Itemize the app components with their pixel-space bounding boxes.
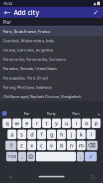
staticText: ⌄ <box>96 110 100 116</box>
button[interactable]: Shift <box>5 141 16 150</box>
button[interactable]: m <box>77 141 86 150</box>
staticText: Part <box>72 111 79 116</box>
button[interactable]: ?123 <box>6 152 17 161</box>
button[interactable]: Period <box>77 152 84 161</box>
button[interactable]: Back <box>2 172 18 182</box>
button[interactable]: Back <box>1 7 13 18</box>
button[interactable]: a <box>7 130 16 139</box>
button[interactable]: Delete <box>87 141 98 150</box>
staticText: ☺ <box>28 153 34 160</box>
staticText: Add city <box>13 8 39 17</box>
button[interactable]: k <box>77 130 86 139</box>
staticText: 10:32 <box>3 1 12 6</box>
button[interactable]: v <box>47 141 56 150</box>
staticText: Par <box>24 111 30 116</box>
staticText: ▢ <box>91 174 95 179</box>
button[interactable]: y <box>52 118 61 128</box>
button[interactable]: Parana, Entre Rios, Argentina <box>0 45 103 55</box>
button[interactable]: r <box>32 118 41 128</box>
staticText: Dombivli, Maharashtra, India <box>3 38 54 43</box>
staticText: l <box>91 131 92 138</box>
button[interactable]: j <box>67 130 76 139</box>
staticText: c <box>40 142 43 149</box>
button[interactable]: s <box>17 130 26 139</box>
button[interactable]: e <box>22 118 31 128</box>
staticText: u <box>65 120 68 127</box>
staticText: ◁ <box>8 174 11 179</box>
staticText: h <box>60 131 63 138</box>
staticText: z <box>20 142 23 149</box>
button[interactable]: Dombivli, Maharashtra, India <box>0 36 103 45</box>
staticText: k <box>80 131 83 138</box>
staticText: Paramaribo, Paramaribo, Suriname <box>3 57 66 62</box>
button[interactable]: i <box>72 118 81 128</box>
button[interactable]: Paris, Île-de-France, France <box>0 27 103 36</box>
staticText: t <box>46 120 48 127</box>
staticText: g <box>50 131 53 138</box>
button[interactable]: Done <box>90 7 101 18</box>
staticText: o <box>85 120 88 127</box>
staticText: n <box>70 142 73 149</box>
button[interactable]: Recents <box>85 172 101 182</box>
staticText: , <box>22 153 23 160</box>
staticText: f <box>41 131 43 138</box>
button[interactable]: Paramaribo, Paramaribo, Suriname <box>0 55 103 64</box>
staticText: v <box>50 142 53 149</box>
staticText: m <box>79 142 84 149</box>
staticText: ⇧ <box>9 142 13 148</box>
button[interactable]: Parung, West Java, Indonesia <box>0 82 103 92</box>
staticText: i <box>76 120 77 127</box>
staticText: Par <box>3 18 11 25</box>
button[interactable]: Voice input <box>2 111 7 116</box>
button[interactable]: Expand suggestions <box>96 111 101 116</box>
button[interactable]: Comma <box>18 152 26 161</box>
button[interactable]: h <box>57 130 66 139</box>
staticText: r <box>36 120 38 127</box>
button[interactable]: b <box>57 141 66 150</box>
button[interactable]: Home <box>36 172 66 182</box>
staticText: ✓ <box>93 9 99 16</box>
staticText: b <box>60 142 63 149</box>
button[interactable]: p <box>92 118 101 128</box>
button[interactable]: Old Kasaragod, Rajshahi Division, Bangla… <box>0 92 103 101</box>
staticText: s <box>20 131 23 138</box>
staticText: x <box>30 142 33 149</box>
button[interactable]: z <box>17 141 26 150</box>
button[interactable]: Space <box>36 152 76 161</box>
button[interactable]: g <box>47 130 56 139</box>
staticText: Paradise, Nevada, United States <box>3 66 57 71</box>
staticText: d <box>30 131 33 138</box>
button[interactable]: w <box>12 118 21 128</box>
staticText: Party <box>46 111 55 116</box>
staticText: e <box>25 120 28 127</box>
staticText: Paris, Île-de-France, France <box>3 29 50 34</box>
button[interactable]: f <box>37 130 46 139</box>
staticText: a <box>10 131 13 138</box>
staticText: Parana, Entre Rios, Argentina <box>3 47 53 53</box>
button[interactable]: o <box>82 118 91 128</box>
staticText: y <box>55 120 58 127</box>
staticText: Old Kasaragod, Rajshahi Division, Bangla… <box>3 94 81 99</box>
button[interactable]: Parauapebas, Pará, Brazil <box>0 73 103 82</box>
staticText: p <box>95 120 98 127</box>
staticText: ▲ <box>93 1 96 6</box>
staticText: . <box>80 153 81 160</box>
button[interactable]: n <box>67 141 76 150</box>
button[interactable]: t <box>42 118 51 128</box>
button[interactable]: u <box>62 118 71 128</box>
staticText: Parauapebas, Pará, Brazil <box>3 75 48 80</box>
button[interactable]: Enter <box>85 152 97 161</box>
button[interactable]: c <box>37 141 46 150</box>
staticText: ✓ <box>89 153 93 160</box>
button[interactable]: Paradise, Nevada, United States <box>0 64 103 73</box>
staticText: ?123 <box>8 154 16 159</box>
button[interactable]: x <box>27 141 36 150</box>
staticText: ⌫ <box>88 142 96 148</box>
button[interactable]: l <box>87 130 96 139</box>
button[interactable]: d <box>27 130 36 139</box>
staticText: ← <box>4 8 11 17</box>
staticText: j <box>71 131 72 138</box>
staticText: Parung, West Java, Indonesia <box>3 84 52 90</box>
button[interactable]: Emoji <box>27 152 35 161</box>
button[interactable]: q <box>2 118 11 128</box>
